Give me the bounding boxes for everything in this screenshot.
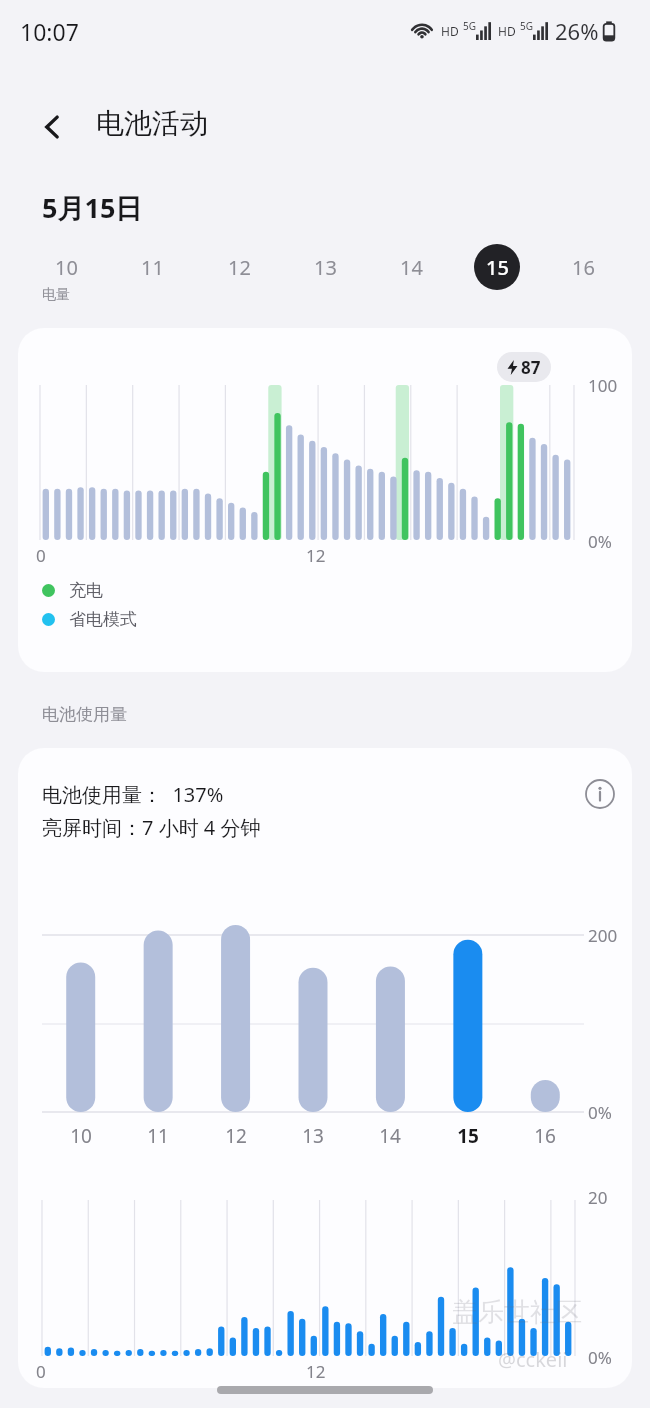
button[interactable]: 0: [18, 328, 632, 672]
button[interactable]: 电池使用量： 137%: [18, 748, 632, 1388]
staticText: 11: [141, 254, 164, 281]
staticText: HD: [441, 23, 459, 39]
staticText: 13: [314, 254, 337, 281]
staticText: 200: [588, 924, 618, 947]
staticText: 电池使用量： 137%: [42, 781, 224, 808]
staticText: 电量: [42, 286, 70, 304]
staticText: 12: [225, 1123, 247, 1149]
button[interactable]: Info: [580, 774, 620, 814]
staticText: 5G: [520, 19, 533, 33]
staticText: 14: [400, 254, 423, 281]
staticText: 100: [588, 374, 618, 397]
staticText: 11: [147, 1123, 169, 1149]
staticText: 12: [228, 254, 251, 281]
staticText: 0: [36, 544, 46, 567]
staticText: 0%: [588, 530, 612, 553]
staticText: 充电: [69, 580, 103, 601]
staticText: HD: [498, 23, 516, 39]
staticText: 14: [379, 1123, 401, 1149]
staticText: 5G: [463, 19, 476, 33]
staticText: 15: [457, 1123, 479, 1149]
staticText: 15: [486, 254, 509, 281]
staticText: 12: [306, 544, 326, 567]
staticText: 87: [521, 356, 541, 379]
staticText: 20: [588, 1186, 608, 1209]
staticText: 13: [302, 1123, 324, 1149]
button[interactable]: 14: [381, 240, 441, 294]
staticText: 0: [36, 1360, 46, 1383]
button[interactable]: 12: [209, 240, 269, 294]
staticText: 电池活动: [96, 106, 208, 141]
staticText: 12: [306, 1360, 326, 1383]
button[interactable]: 16: [553, 240, 613, 294]
staticText: 26%: [555, 16, 599, 46]
staticText: 电池使用量: [42, 704, 127, 725]
staticText: 16: [534, 1123, 556, 1149]
staticText: 16: [572, 254, 595, 281]
staticText: 10: [70, 1123, 92, 1149]
staticText: 10:07: [20, 16, 79, 47]
button[interactable]: 15: [467, 240, 527, 294]
staticText: @cckeii: [498, 1346, 568, 1373]
staticText: 0%: [588, 1346, 612, 1369]
staticText: 5月15日: [42, 189, 143, 226]
button[interactable]: Back: [24, 98, 82, 156]
staticText: 盖乐世社区: [452, 1296, 582, 1329]
staticText: 10: [55, 254, 78, 281]
staticText: 0%: [588, 1101, 612, 1124]
button[interactable]: 10: [36, 240, 96, 294]
button[interactable]: 13: [295, 240, 355, 294]
staticText: 省电模式: [69, 609, 137, 630]
button[interactable]: 11: [122, 240, 182, 294]
staticText: 亮屏时间：7 小时 4 分钟: [42, 814, 261, 841]
